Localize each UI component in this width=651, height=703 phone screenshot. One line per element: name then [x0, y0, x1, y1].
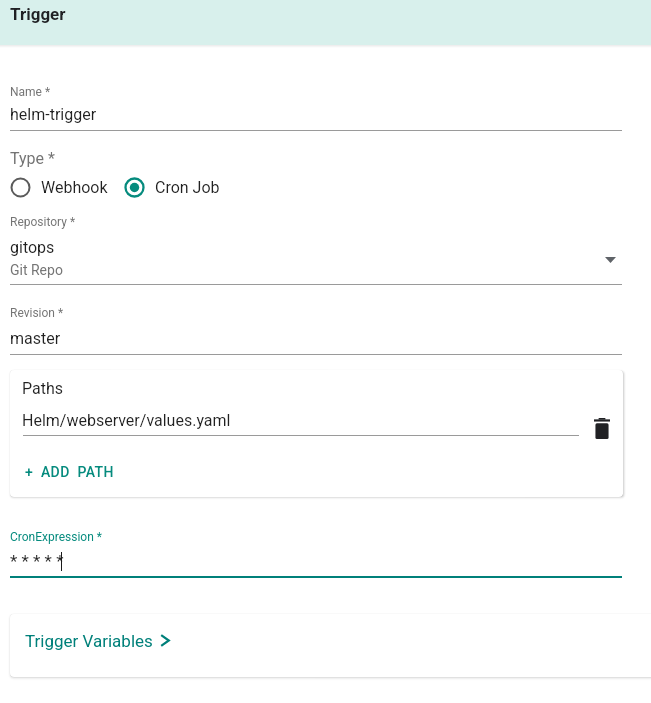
- staticText: Webhook: [41, 178, 108, 197]
- staticText: master: [10, 329, 61, 348]
- staticText: helm-trigger: [10, 105, 97, 124]
- staticText: Name *: [10, 85, 51, 99]
- staticText: Type *: [10, 149, 55, 168]
- button[interactable]: Trigger Variables: [10, 614, 651, 677]
- staticText: Repository *: [10, 215, 76, 229]
- button[interactable]: Delete path: [589, 416, 614, 441]
- staticText: Cron Job: [155, 178, 220, 197]
- button[interactable]: + ADD PATH: [21, 461, 118, 483]
- staticText: gitops: [10, 238, 55, 257]
- staticText: Trigger Variables: [25, 631, 153, 651]
- button[interactable]: Webhook: [8, 174, 110, 201]
- staticText: Git Repo: [10, 262, 63, 278]
- staticText: Paths: [22, 379, 64, 398]
- staticText: Revision *: [10, 306, 64, 320]
- staticText: CronExpression *: [10, 530, 102, 544]
- staticText: * * * * *: [10, 551, 64, 571]
- staticText: Helm/webserver/values.yaml: [22, 411, 231, 430]
- button[interactable]: Cron Job: [122, 174, 222, 201]
- button[interactable]: Open Repository dropdown: [598, 248, 622, 272]
- staticText: + ADD PATH: [25, 464, 114, 480]
- staticText: Trigger: [10, 4, 66, 24]
